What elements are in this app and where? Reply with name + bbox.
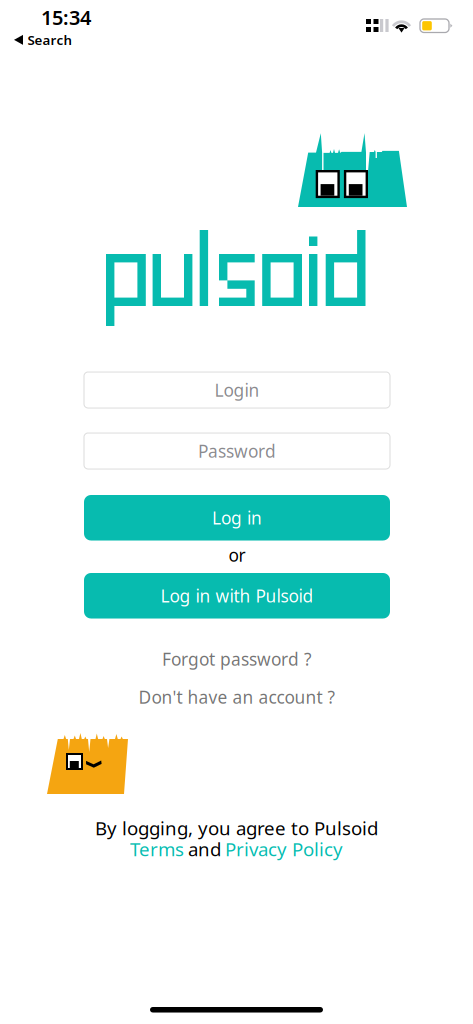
staticText: Password — [198, 439, 276, 462]
staticText: Search — [27, 31, 72, 49]
button[interactable]: Log in with Pulsoid — [84, 573, 390, 618]
button[interactable]: Login — [84, 372, 390, 408]
staticText: Login — [214, 378, 259, 401]
staticText: Privacy Policy — [225, 837, 343, 861]
staticText: Log in with Pulsoid — [160, 584, 313, 607]
button[interactable]: Log in — [84, 495, 390, 540]
staticText: 15:34 — [41, 4, 91, 31]
button[interactable]: Forgot password ? — [84, 647, 390, 671]
staticText: or — [228, 543, 245, 566]
staticText: By logging, you agree to Pulsoid — [95, 816, 378, 840]
button[interactable]: Don't have an account ? — [84, 685, 390, 709]
staticText: Don't have an account ? — [138, 685, 335, 708]
staticText: Terms — [130, 837, 184, 861]
button[interactable]: Terms — [130, 837, 184, 861]
button[interactable]: Privacy Policy — [225, 837, 343, 861]
staticText: and — [188, 837, 221, 861]
staticText: Forgot password ? — [162, 647, 312, 670]
button[interactable]: Password — [84, 433, 390, 469]
staticText: Log in — [212, 506, 262, 529]
button[interactable]: Search — [14, 31, 72, 49]
